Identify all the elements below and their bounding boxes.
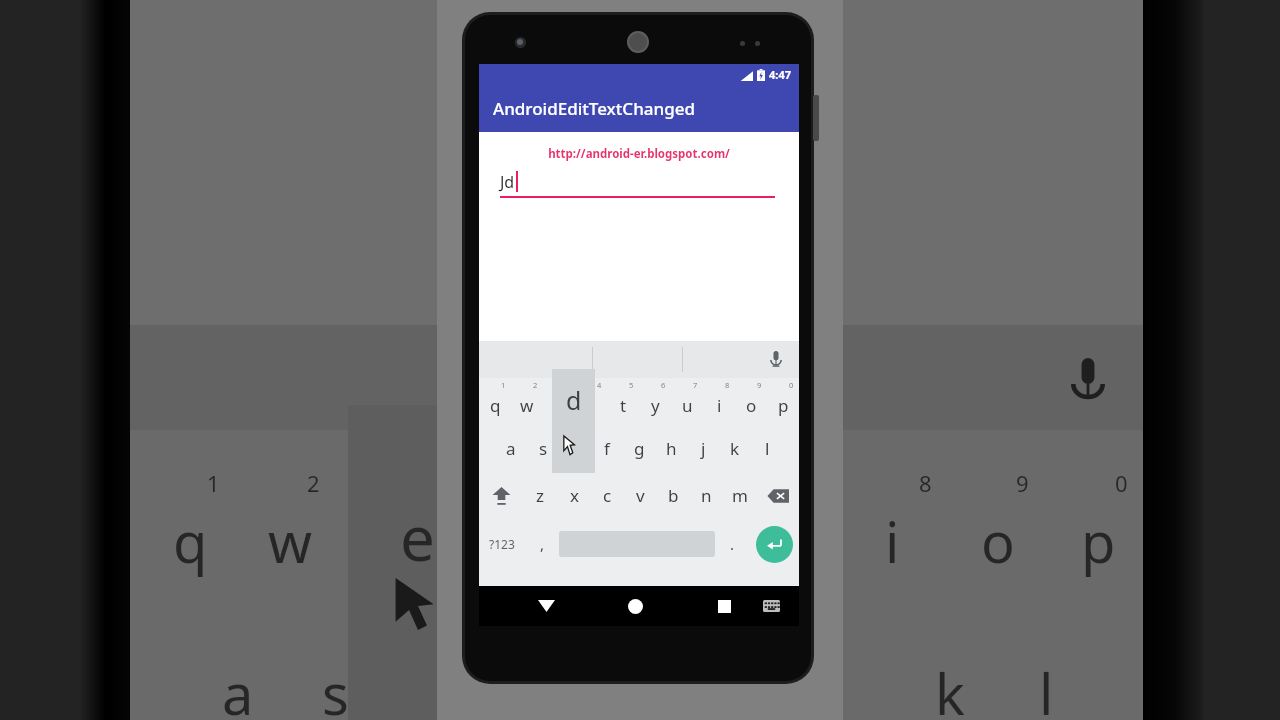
staticText: i: [717, 394, 722, 417]
staticText: a: [506, 437, 516, 460]
button[interactable]: ,: [525, 519, 559, 569]
button[interactable]: x: [557, 472, 591, 519]
staticText: AndroidEditTextChanged: [493, 97, 696, 120]
button[interactable]: m: [723, 472, 756, 519]
staticText: t: [620, 394, 627, 417]
button[interactable]: l: [751, 425, 783, 472]
staticText: 4:47: [769, 67, 791, 82]
button[interactable]: 5: [607, 378, 639, 425]
staticText: ?123: [489, 536, 515, 552]
staticText: l: [765, 437, 770, 460]
button[interactable]: ?123: [479, 519, 525, 569]
button[interactable]: j: [687, 425, 719, 472]
button[interactable]: g: [623, 425, 655, 472]
button[interactable]: 3: [543, 378, 575, 425]
button[interactable]: Jd: [500, 166, 775, 198]
button[interactable]: 2: [511, 378, 543, 425]
staticText: http://android-er.blogspot.com/: [479, 146, 799, 162]
staticText: 1: [207, 468, 220, 498]
staticText: c: [603, 484, 612, 507]
staticText: 0: [789, 380, 794, 390]
staticText: w: [520, 394, 534, 417]
staticText: k: [935, 655, 965, 720]
staticText: 8: [725, 380, 730, 390]
staticText: y: [651, 394, 660, 417]
button[interactable]: 0: [767, 378, 799, 425]
button[interactable]: Hide keyboard: [523, 586, 569, 626]
staticText: 2: [307, 468, 320, 498]
staticText: i: [885, 503, 900, 579]
staticText: 5: [629, 380, 634, 390]
button[interactable]: Backspace: [756, 472, 799, 519]
button[interactable]: 1: [479, 378, 511, 425]
staticText: d: [566, 383, 582, 417]
staticText: k: [730, 437, 740, 460]
staticText: 9: [1016, 468, 1029, 498]
staticText: a: [222, 655, 254, 720]
staticText: d: [570, 437, 581, 460]
staticText: w: [268, 503, 313, 579]
staticText: p: [778, 394, 789, 417]
button[interactable]: z: [523, 472, 557, 519]
button[interactable]: 4: [575, 378, 607, 425]
button[interactable]: v: [624, 472, 657, 519]
staticText: s: [322, 655, 349, 720]
button[interactable]: 7: [671, 378, 703, 425]
staticText: b: [668, 484, 679, 507]
staticText: .: [730, 534, 735, 554]
button[interactable]: c: [591, 472, 624, 519]
staticText: 7: [693, 380, 698, 390]
staticText: 4: [597, 380, 602, 390]
staticText: o: [746, 394, 757, 417]
staticText: v: [636, 484, 645, 507]
staticText: e: [400, 495, 435, 579]
staticText: n: [701, 484, 712, 507]
staticText: l: [1039, 655, 1054, 720]
staticText: s: [539, 437, 548, 460]
button[interactable]: 9: [735, 378, 767, 425]
button[interactable]: f: [591, 425, 623, 472]
button[interactable]: Enter: [749, 519, 799, 569]
staticText: o: [981, 503, 1015, 579]
button[interactable]: n: [690, 472, 723, 519]
button[interactable]: h: [655, 425, 687, 472]
button[interactable]: Voice input: [763, 347, 789, 373]
staticText: Jd: [500, 171, 515, 193]
staticText: u: [682, 394, 693, 417]
staticText: j: [701, 437, 706, 460]
button[interactable]: AndroidEditTextChanged: [479, 84, 799, 132]
button[interactable]: a: [495, 425, 527, 472]
button[interactable]: Recent apps: [701, 586, 747, 626]
button[interactable]: .: [715, 519, 749, 569]
staticText: q: [173, 503, 208, 579]
staticText: m: [732, 484, 748, 507]
button[interactable]: s: [527, 425, 559, 472]
staticText: 1: [501, 380, 506, 390]
staticText: 0: [1115, 468, 1128, 498]
staticText: 2: [533, 380, 538, 390]
staticText: f: [604, 437, 610, 460]
button[interactable]: Shift: [479, 472, 523, 519]
button[interactable]: Switch keyboard: [751, 586, 791, 626]
button[interactable]: d: [559, 425, 591, 472]
button[interactable]: 8: [703, 378, 735, 425]
button[interactable]: k: [719, 425, 751, 472]
staticText: q: [490, 394, 501, 417]
staticText: 6: [661, 380, 666, 390]
staticText: p: [1081, 503, 1116, 579]
staticText: 8: [919, 468, 932, 498]
staticText: z: [536, 484, 544, 507]
staticText: g: [634, 437, 645, 460]
staticText: ,: [540, 534, 545, 554]
button[interactable]: Home: [612, 586, 658, 626]
staticText: x: [570, 484, 579, 507]
button[interactable]: 6: [639, 378, 671, 425]
staticText: h: [666, 437, 677, 460]
button[interactable]: b: [657, 472, 690, 519]
staticText: 9: [757, 380, 762, 390]
